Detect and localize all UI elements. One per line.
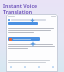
button[interactable] — [8, 22, 38, 25]
button[interactable] — [8, 19, 56, 21]
staticText: Instant Voice Translation — [3, 2, 38, 15]
button[interactable] — [8, 37, 40, 41]
